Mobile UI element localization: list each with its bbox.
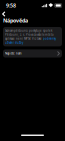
staticText: užívání služby [5,41,23,44]
staticText: podmínky [43,37,56,40]
staticText: Seznam pěstounů poskytuje spolek [5,29,52,32]
button[interactable]: Napište nám [0,49,65,58]
staticText: Napište nám [5,52,21,55]
staticText: aplikace není MPSV. Viz také [5,37,42,40]
button[interactable]: podmínky [43,37,56,40]
button[interactable]: Back [0,11,10,17]
staticText: Pěstouni, z. s. Provozovatelem této [5,33,54,36]
staticText: 9:58 [6,2,16,9]
button[interactable]: užívání služby [5,41,23,44]
staticText: Nápověda [3,17,28,24]
